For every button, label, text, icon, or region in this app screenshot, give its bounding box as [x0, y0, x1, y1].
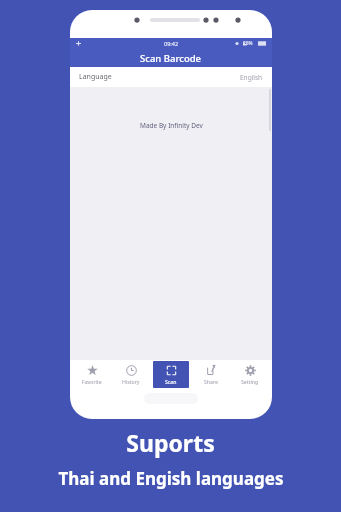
- button[interactable]: History: [113, 361, 149, 388]
- staticText: 09:42: [164, 40, 179, 47]
- staticText: Suports: [126, 427, 215, 458]
- button[interactable]: Scan: [153, 361, 189, 388]
- staticText: Thai and Engish languages: [58, 467, 284, 490]
- staticText: English: [240, 73, 263, 82]
- staticText: History: [122, 378, 140, 385]
- staticText: Share: [204, 378, 218, 385]
- staticText: Setting: [241, 378, 259, 385]
- button[interactable]: Share: [193, 361, 229, 388]
- staticText: Language: [79, 72, 112, 82]
- button[interactable]: Setting: [232, 361, 268, 388]
- staticText: Scan Barcode: [140, 52, 202, 65]
- staticText: Made By Infinity Dev: [140, 121, 203, 130]
- button[interactable]: Scan Barcode: [70, 49, 272, 67]
- button[interactable]: Favorite: [74, 361, 110, 388]
- staticText: 26%: [243, 40, 253, 47]
- staticText: Scan: [165, 378, 177, 385]
- staticText: Favorite: [82, 378, 102, 385]
- button[interactable]: Language: [70, 67, 272, 87]
